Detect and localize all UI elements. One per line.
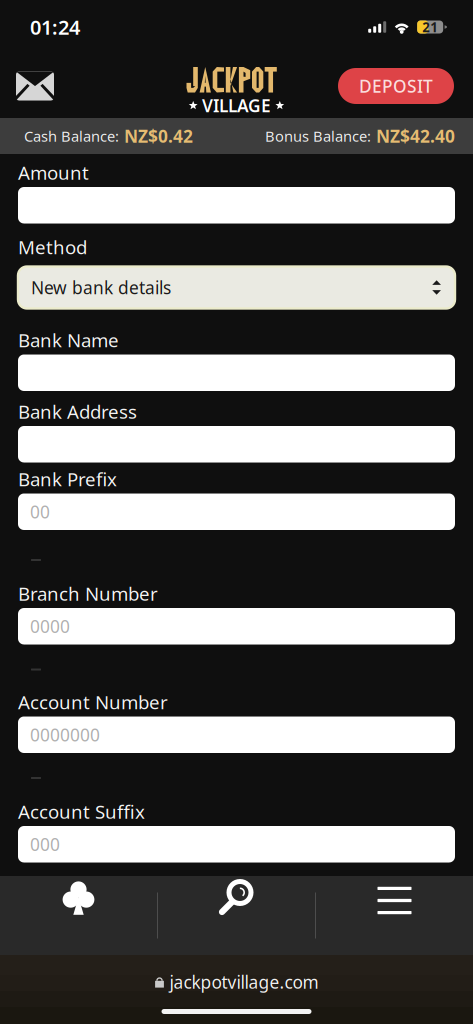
- staticText: 01:24: [30, 14, 80, 40]
- button[interactable]: Search: [158, 876, 315, 955]
- staticText: Account Number: [18, 689, 168, 714]
- staticText: Bank Address: [18, 399, 137, 424]
- staticText: Account Suffix: [18, 799, 145, 824]
- staticText: New bank details: [31, 276, 171, 299]
- staticText: VILLAGE: [202, 94, 271, 117]
- staticText: NZ$42.40: [371, 124, 455, 147]
- button[interactable]: jackpotvillage.com: [0, 966, 473, 998]
- staticText: 0000: [30, 615, 70, 638]
- staticText: NZ$0.42: [119, 124, 193, 147]
- staticText: Cash Balance:: [24, 126, 119, 146]
- staticText: 000: [30, 833, 60, 856]
- staticText: Bank Name: [18, 327, 119, 352]
- button[interactable]: Games: [0, 876, 157, 955]
- staticText: 00: [30, 500, 50, 523]
- button[interactable]: New bank details: [18, 266, 455, 308]
- button[interactable]: DEPOSIT: [338, 68, 454, 104]
- staticText: 0000000: [30, 723, 100, 746]
- button[interactable]: Menu: [316, 876, 473, 955]
- staticText: Amount: [18, 160, 89, 185]
- staticText: Bonus Balance:: [265, 126, 371, 146]
- staticText: Bank Prefix: [18, 466, 117, 491]
- button[interactable]: Messages: [7, 60, 63, 112]
- staticText: 21: [422, 18, 438, 36]
- staticText: jackpotvillage.com: [169, 970, 318, 993]
- staticText: Method: [18, 234, 87, 259]
- staticText: Branch Number: [18, 581, 158, 606]
- staticText: DEPOSIT: [359, 74, 433, 97]
